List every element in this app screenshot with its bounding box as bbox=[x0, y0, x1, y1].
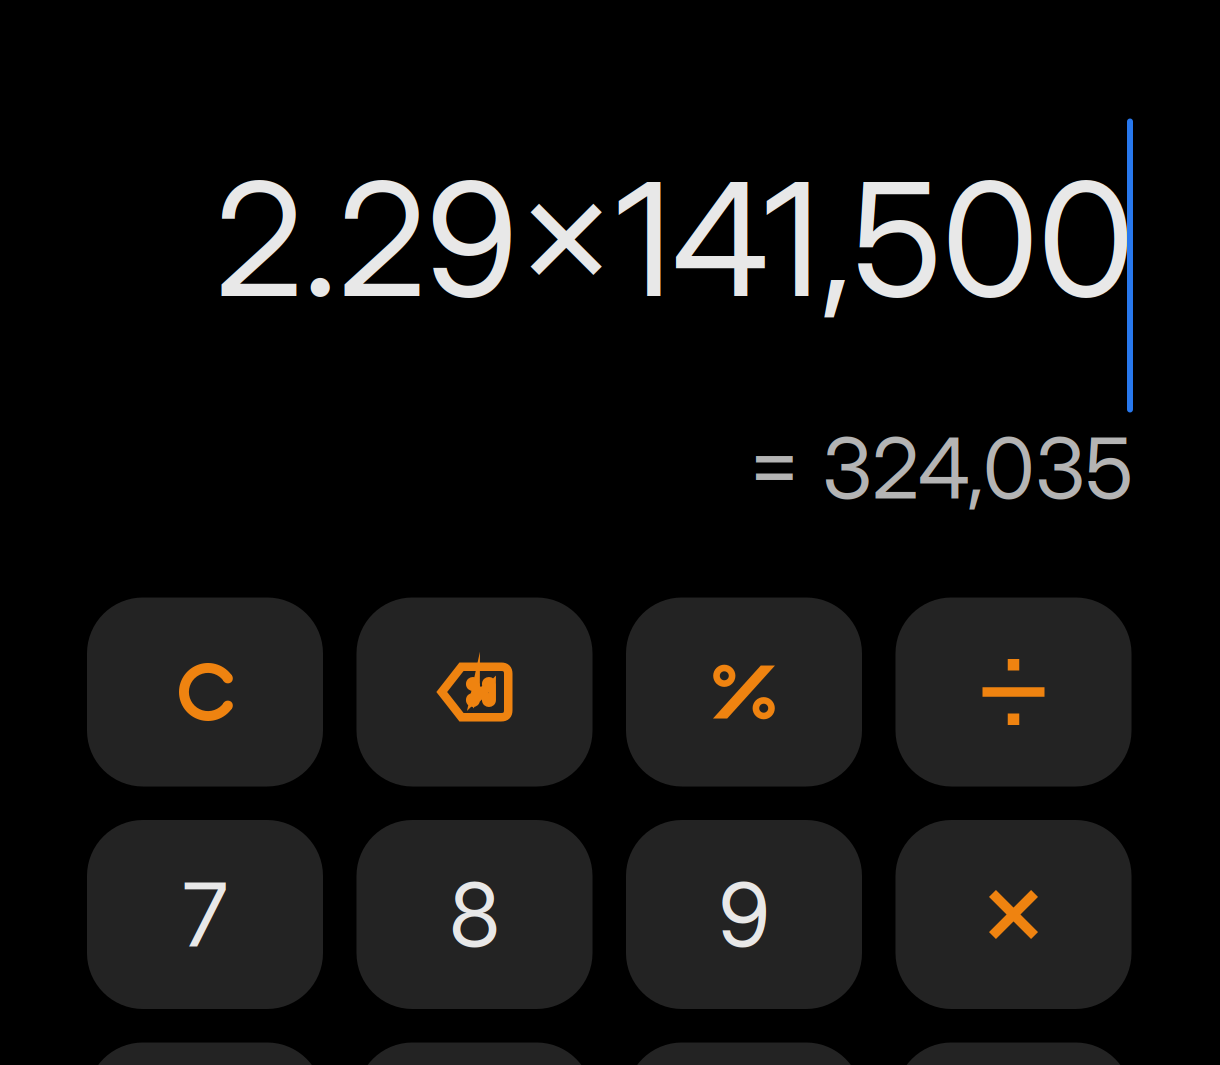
button[interactable]: Divide bbox=[895, 597, 1131, 786]
staticText: 7 bbox=[182, 861, 227, 968]
button[interactable]: Delete bbox=[356, 597, 592, 786]
button[interactable]: Clear bbox=[87, 597, 323, 786]
button[interactable]: 6 bbox=[626, 1042, 862, 1065]
button[interactable]: Minus bbox=[895, 1042, 1131, 1065]
staticText: 2.29×141,500 bbox=[215, 144, 1134, 334]
button[interactable]: 8 bbox=[356, 820, 592, 1009]
button[interactable]: 5 bbox=[356, 1042, 592, 1065]
button[interactable]: Percent bbox=[626, 597, 862, 786]
button[interactable]: 4 bbox=[87, 1042, 323, 1065]
button[interactable]: 9 bbox=[626, 820, 862, 1009]
staticText: = 324,035 bbox=[748, 417, 1133, 519]
button[interactable]: Multiply bbox=[895, 820, 1131, 1009]
staticText: 9 bbox=[718, 861, 769, 968]
button[interactable]: 7 bbox=[87, 820, 323, 1009]
staticText: 8 bbox=[449, 861, 500, 968]
